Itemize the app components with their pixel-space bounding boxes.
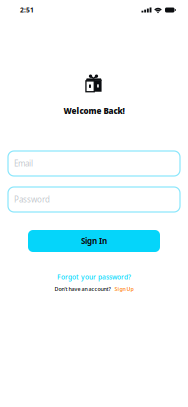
staticText: Don't have an account?: [54, 285, 110, 293]
staticText: Email: [14, 158, 33, 169]
staticText: Sign Up: [114, 285, 133, 293]
staticText: Password: [14, 194, 50, 205]
staticText: Welcome Back!: [63, 106, 124, 116]
button[interactable]: Sign Up: [114, 285, 133, 293]
staticText: Forgot your password?: [57, 273, 131, 281]
button[interactable]: Password: [8, 187, 180, 212]
staticText: 2:51: [20, 6, 34, 14]
button[interactable]: Sign In: [28, 230, 160, 252]
button[interactable]: Email: [8, 151, 180, 176]
button[interactable]: Forgot your password?: [0, 272, 188, 282]
staticText: Sign In: [81, 236, 107, 246]
